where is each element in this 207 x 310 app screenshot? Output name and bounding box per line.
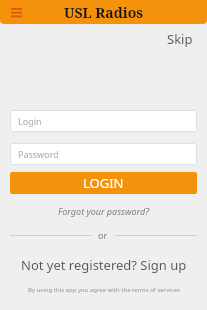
button[interactable]: Forgot your password? (56, 203, 152, 219)
staticText: Login (18, 115, 42, 127)
staticText: By using this app you agree with the ter… (28, 286, 180, 294)
staticText: Not yet registered? Sign up (21, 256, 187, 274)
staticText: Password (18, 148, 59, 160)
staticText: Forgot your password? (58, 205, 150, 217)
button[interactable]: Password (10, 143, 197, 165)
button[interactable]: Not yet registered? Sign up (18, 253, 190, 277)
button[interactable]: Login (10, 110, 197, 132)
button[interactable]: LOGIN (10, 172, 197, 194)
button[interactable]: Skip (165, 28, 195, 50)
button[interactable]: Open navigation menu (8, 4, 24, 20)
staticText: Skip (167, 30, 193, 48)
staticText: or (98, 229, 108, 241)
staticText: USL Radios (64, 3, 144, 22)
staticText: LOGIN (83, 174, 124, 192)
